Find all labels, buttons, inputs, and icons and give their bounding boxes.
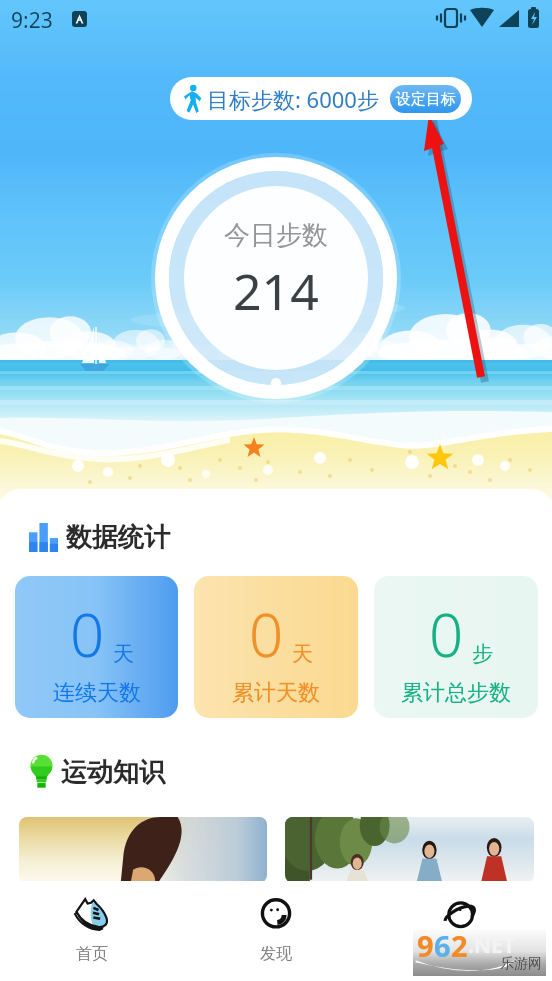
staticText: 天 <box>113 641 134 667</box>
staticText: 连续天数 <box>53 679 141 707</box>
staticText: 2 <box>451 926 468 965</box>
button[interactable]: Profile <box>368 881 552 981</box>
staticText: 9:23 <box>11 6 53 35</box>
staticText: 214 <box>233 257 319 325</box>
button[interactable]: Discover <box>184 881 368 981</box>
staticText: 发现 <box>260 944 292 964</box>
button[interactable]: 目标步数: 6000步 <box>170 77 472 120</box>
staticText: 乐游网 <box>500 955 542 973</box>
button[interactable] <box>19 817 267 883</box>
button[interactable] <box>285 817 534 883</box>
button[interactable]: 0 <box>374 576 538 718</box>
staticText: 累计天数 <box>232 679 320 707</box>
staticText: .NET <box>468 931 515 960</box>
staticText: 6 <box>434 926 451 965</box>
staticText: 0 <box>70 593 105 675</box>
staticText: 天 <box>292 641 313 667</box>
staticText: 设定目标 <box>396 90 456 109</box>
staticText: 运动知识 <box>61 756 165 789</box>
staticText: 目标步数: 6000步 <box>207 84 379 114</box>
staticText: 9 <box>417 926 434 965</box>
button[interactable]: 0 <box>15 576 178 718</box>
staticText: 0 <box>249 593 284 675</box>
staticText: 今日步数 <box>224 219 328 252</box>
staticText: 0 <box>429 593 464 675</box>
staticText: 数据统计 <box>66 521 170 554</box>
staticText: 首页 <box>76 944 108 964</box>
staticText: 步 <box>472 641 493 667</box>
button[interactable]: Home <box>0 881 184 981</box>
staticText: 我的 <box>444 944 476 964</box>
button[interactable]: 设定目标 <box>390 85 461 113</box>
button[interactable]: 0 <box>194 576 358 718</box>
staticText: 累计总步数 <box>401 679 511 707</box>
